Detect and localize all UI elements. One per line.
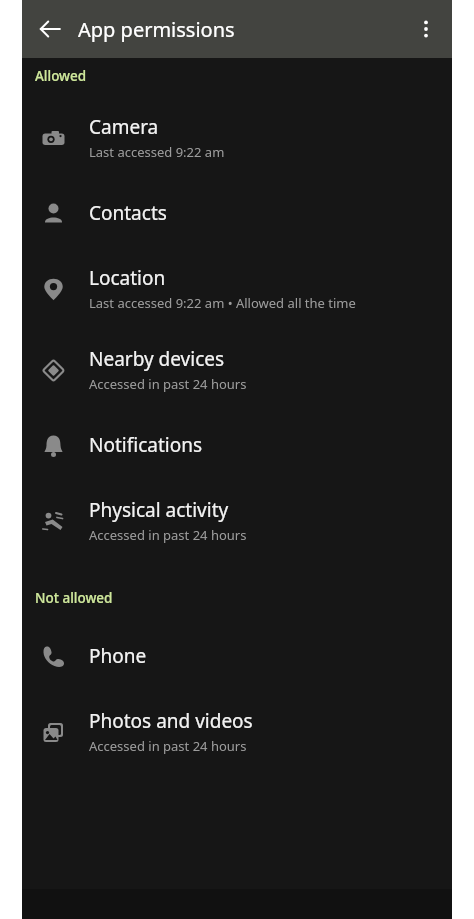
staticText: Location: [89, 265, 166, 291]
staticText: Contacts: [89, 200, 167, 226]
button[interactable]: More options: [406, 9, 446, 49]
staticText: Accessed in past 24 hours: [89, 375, 247, 393]
staticText: Accessed in past 24 hours: [89, 737, 247, 755]
staticText: Physical activity: [89, 497, 229, 523]
button[interactable]: Camera: [22, 103, 452, 172]
button[interactable]: Back: [30, 9, 70, 49]
button[interactable]: Location: [22, 254, 452, 323]
staticText: Last accessed 9:22 am • Allowed all the …: [89, 294, 356, 312]
staticText: Not allowed: [35, 589, 113, 607]
staticText: Accessed in past 24 hours: [89, 526, 247, 544]
staticText: Allowed: [35, 67, 87, 85]
staticText: Nearby devices: [89, 346, 225, 372]
button[interactable]: Photos and videos: [22, 697, 452, 766]
staticText: Phone: [89, 643, 147, 669]
staticText: Notifications: [89, 432, 203, 458]
button[interactable]: Notifications: [22, 416, 452, 474]
button[interactable]: Contacts: [22, 184, 452, 242]
button[interactable]: Phone: [22, 627, 452, 685]
button[interactable]: Physical activity: [22, 486, 452, 555]
staticText: Camera: [89, 114, 159, 140]
staticText: Photos and videos: [89, 708, 253, 734]
staticText: Last accessed 9:22 am: [89, 143, 225, 161]
staticText: App permissions: [78, 16, 235, 43]
button[interactable]: Nearby devices: [22, 335, 452, 404]
